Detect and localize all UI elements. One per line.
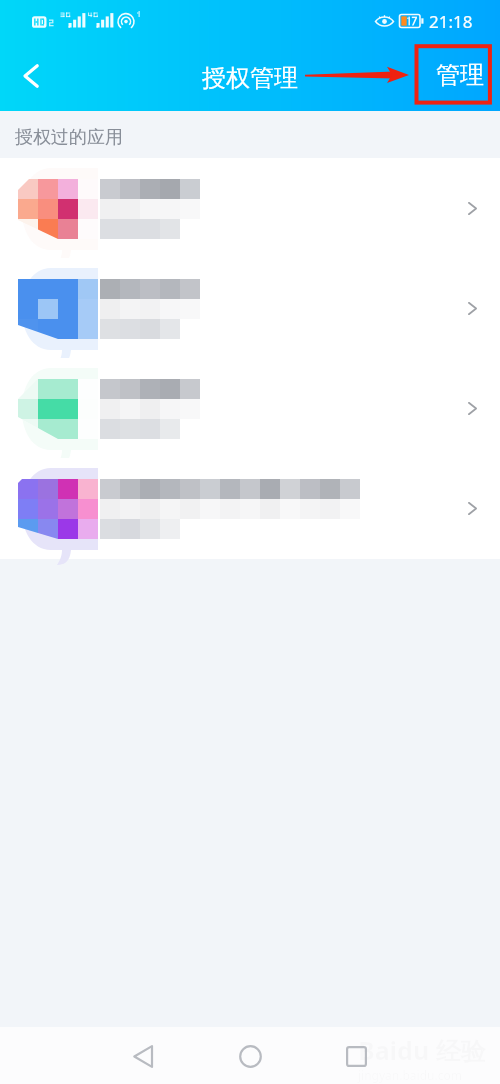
button[interactable]: Back	[7, 52, 55, 100]
button[interactable]	[0, 358, 500, 458]
button[interactable]: Home	[226, 1032, 274, 1080]
button[interactable]	[0, 458, 500, 558]
staticText: 授权过的应用	[15, 126, 123, 149]
staticText: 21:18	[429, 10, 473, 33]
button[interactable]: Back	[119, 1032, 167, 1080]
staticText: Baidu 经验	[358, 1033, 486, 1067]
staticText: 管理	[436, 60, 484, 90]
button[interactable]: 管理	[431, 51, 489, 99]
staticText: 授权管理	[202, 63, 298, 93]
button[interactable]	[0, 158, 500, 258]
button[interactable]: Recent apps	[332, 1032, 380, 1080]
button[interactable]	[0, 258, 500, 358]
